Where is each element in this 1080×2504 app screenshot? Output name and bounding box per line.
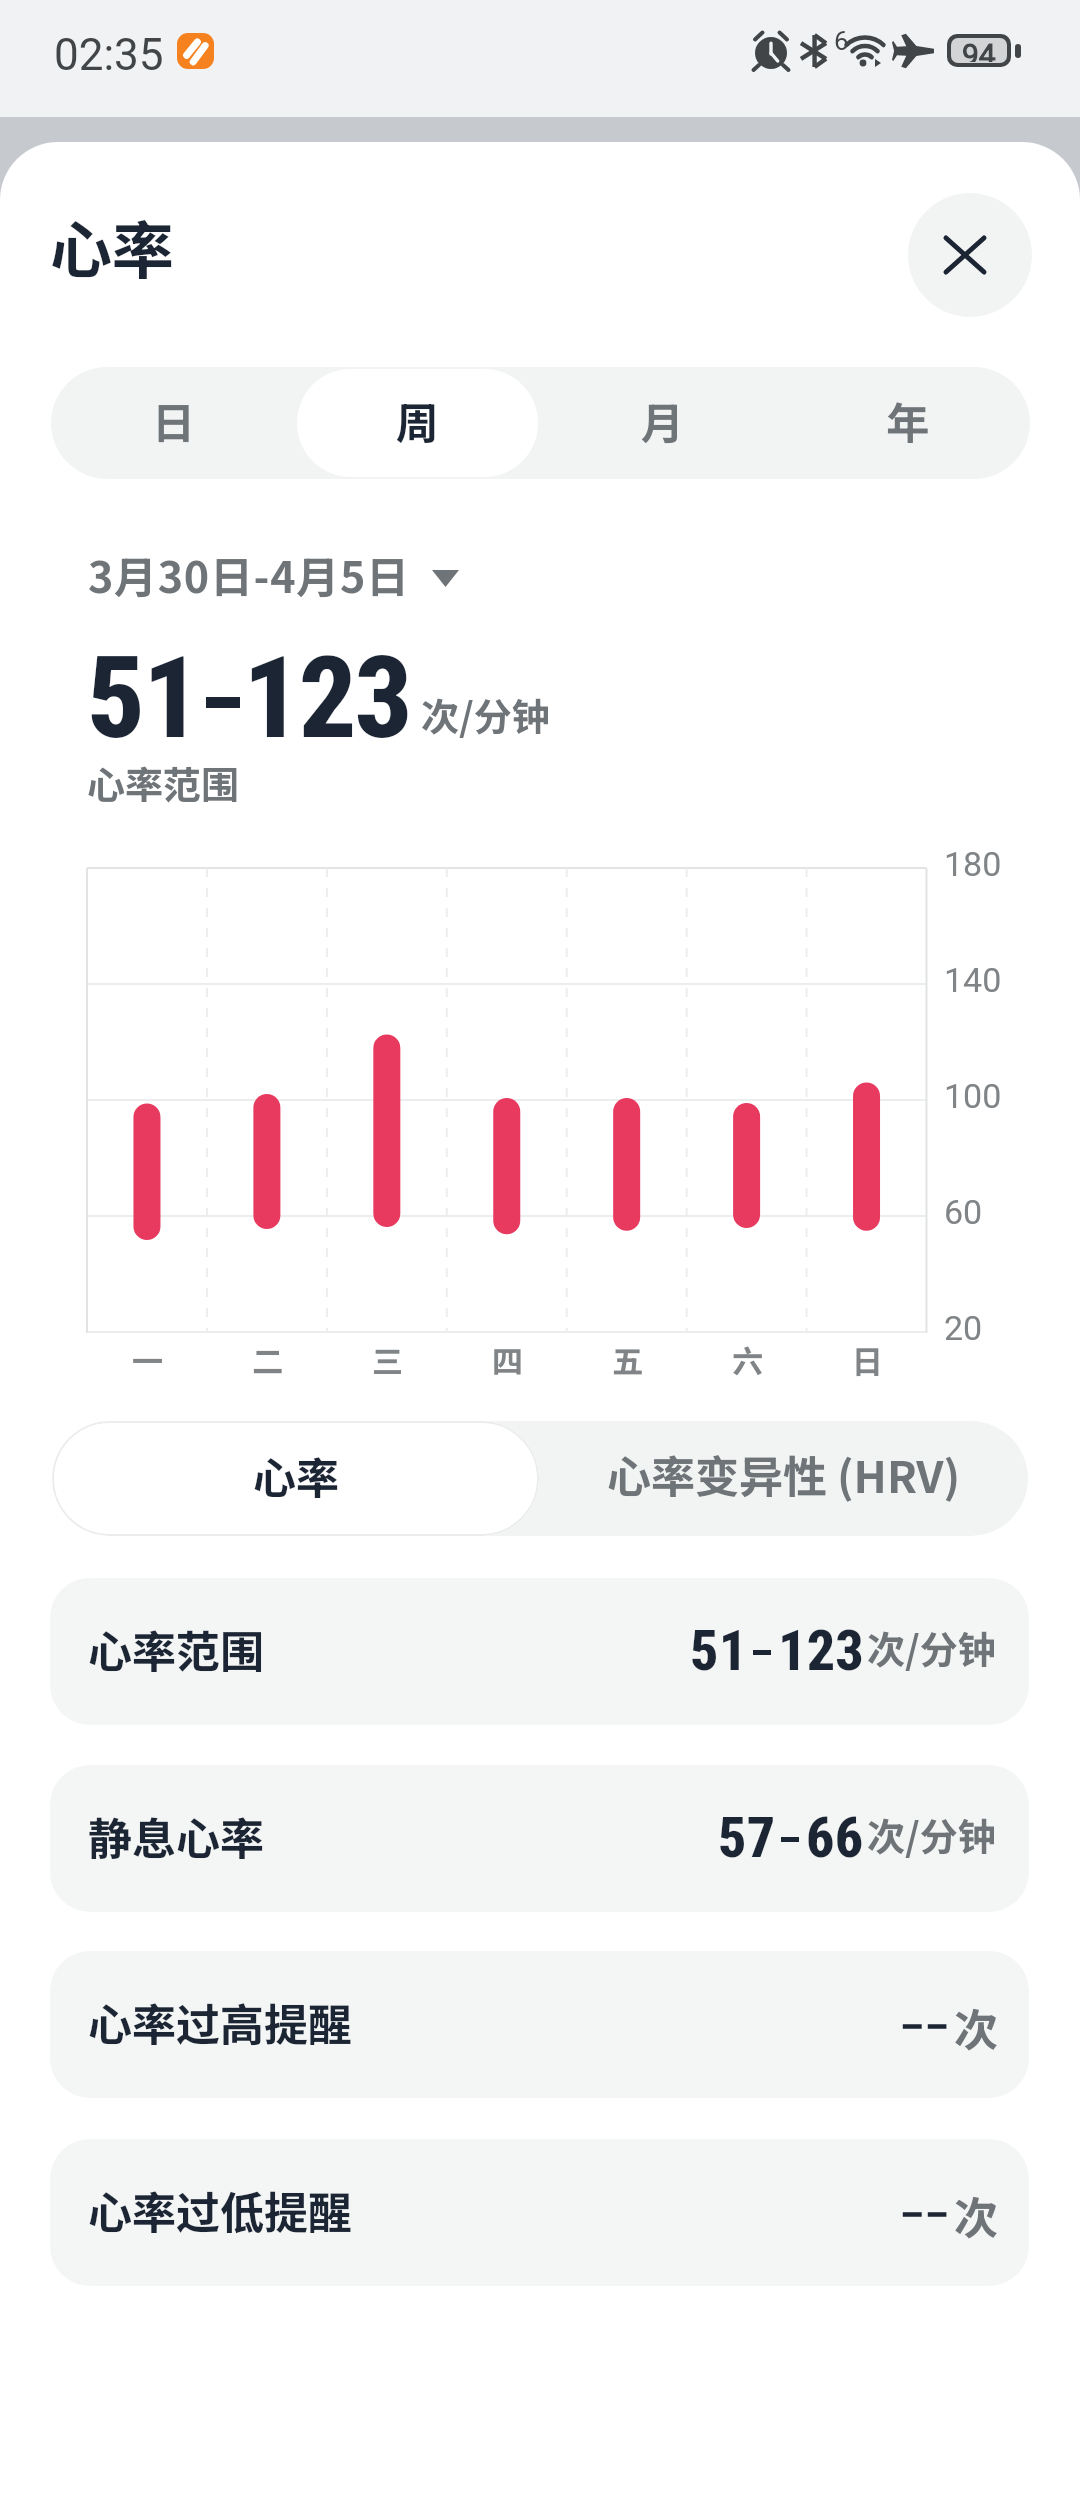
staticText: 3月30日-4月5日 <box>88 543 410 605</box>
staticText: 51 <box>87 631 199 765</box>
staticText: 静息心率 <box>88 1804 264 1868</box>
button[interactable]: 年 <box>787 369 1028 477</box>
staticText: 次 <box>954 1995 998 2059</box>
staticText: 123 <box>778 1618 864 1684</box>
staticText: 次/分钟 <box>867 1620 996 1675</box>
staticText: 94 <box>962 38 996 62</box>
staticText: 心率过高提醒 <box>88 1990 352 2054</box>
staticText: 心率 <box>253 1444 339 1506</box>
staticText: 月 <box>641 389 684 451</box>
staticText: 51 <box>690 1618 748 1684</box>
button[interactable]: 日 <box>53 369 293 477</box>
staticText: 123 <box>243 631 411 765</box>
staticText: 心率 <box>50 201 175 291</box>
staticText: 日 <box>152 389 195 451</box>
button[interactable]: 心率过低提醒 <box>50 2139 1029 2286</box>
button[interactable]: 心率过高提醒 <box>50 1951 1029 2098</box>
staticText: 次/分钟 <box>421 687 550 742</box>
staticText: 心率范围 <box>87 755 240 810</box>
staticText: 次 <box>954 2183 998 2247</box>
button[interactable]: 月 <box>542 369 783 477</box>
staticText: 180 <box>944 844 1002 884</box>
button[interactable]: 静息心率 <box>50 1765 1029 1912</box>
staticText: 心率变异性 (HRV) <box>607 1442 961 1506</box>
staticText: 年 <box>886 389 929 451</box>
staticText: 三 <box>372 1337 403 1382</box>
staticText: 6 <box>834 26 849 56</box>
button[interactable]: 周 <box>297 369 538 477</box>
staticText: 02:35 <box>54 29 164 81</box>
staticText: 心率过低提醒 <box>88 2178 352 2242</box>
staticText: 100 <box>944 1076 1002 1116</box>
staticText: 心率范围 <box>88 1617 264 1681</box>
staticText: 日 <box>852 1337 883 1382</box>
staticText: 一 <box>132 1337 163 1382</box>
button[interactable]: 3月30日-4月5日 <box>88 543 459 605</box>
button[interactable]: 心率 <box>52 1421 539 1536</box>
staticText: 140 <box>944 960 1002 1000</box>
staticText: 五 <box>612 1337 643 1382</box>
staticText: 66 <box>806 1805 864 1871</box>
staticText: 周 <box>396 389 439 451</box>
button[interactable]: 心率变异性 (HRV) <box>539 1421 1028 1536</box>
staticText: 57 <box>718 1805 776 1871</box>
staticText: 二 <box>252 1337 283 1382</box>
button[interactable]: Close <box>908 193 1032 317</box>
staticText: 四 <box>492 1337 523 1382</box>
staticText: 20 <box>944 1308 983 1348</box>
staticText: 60 <box>944 1192 983 1232</box>
staticText: 次/分钟 <box>867 1807 996 1862</box>
button[interactable]: 心率范围 <box>50 1578 1029 1725</box>
staticText: 六 <box>732 1337 763 1382</box>
